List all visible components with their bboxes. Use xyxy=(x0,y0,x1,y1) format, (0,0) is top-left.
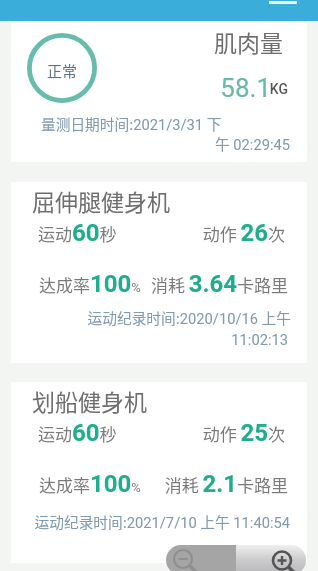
staticText: 达成率100% xyxy=(39,270,141,298)
staticText: 消耗 2.1卡路里 xyxy=(11,470,288,498)
staticText: 58.1 xyxy=(11,73,271,103)
staticText: 11:02:13 xyxy=(11,331,288,348)
staticText: 午 02:29:45 xyxy=(11,133,290,154)
staticText: KG xyxy=(11,81,288,97)
staticText: 肌肉量 xyxy=(11,25,283,58)
staticText: 正常 xyxy=(47,60,78,82)
button[interactable]: 划船健身机 xyxy=(11,382,307,563)
staticText: 运动60秒 xyxy=(38,219,117,247)
staticText: 运动60秒 xyxy=(38,419,117,447)
staticText: 动作 25次 xyxy=(11,419,285,447)
button[interactable]: 正常 xyxy=(11,22,307,162)
staticText: 消耗 3.64卡路里 xyxy=(11,270,288,298)
staticText: 动作 26次 xyxy=(11,219,285,247)
button[interactable]: 屈伸腿健身机 xyxy=(11,182,307,363)
staticText: 划船健身机 xyxy=(32,384,147,417)
staticText: 达成率100% xyxy=(39,470,141,498)
staticText: 量测日期时间:2021/3/31 下 xyxy=(41,113,222,134)
button[interactable]: Zoom out xyxy=(166,545,236,571)
staticText: 运动纪录时间:2021/7/10 上午 11:40:54 xyxy=(11,511,290,532)
staticText: 屈伸腿健身机 xyxy=(32,184,170,217)
button[interactable]: Zoom in xyxy=(236,545,306,571)
staticText: 运动纪录时间:2020/10/16 上午 xyxy=(11,307,291,328)
